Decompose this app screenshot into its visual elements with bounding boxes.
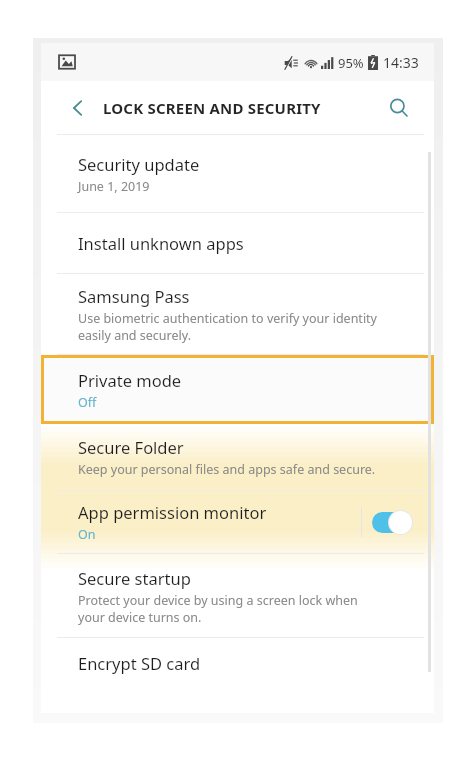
button[interactable]: App permission monitor (41, 491, 434, 553)
button[interactable]: Encrypt SD card (41, 638, 434, 688)
button[interactable]: App permission monitor toggle, On (370, 507, 416, 537)
staticText: June 1, 2019 (78, 178, 150, 195)
button[interactable]: Install unknown apps (41, 213, 434, 273)
staticText: Security update (78, 153, 200, 175)
staticText: 95% (338, 54, 364, 72)
staticText: Secure startup (78, 567, 191, 589)
staticText: Protect your device by using a screen lo… (78, 592, 358, 625)
staticText: Use biometric authentication to verify y… (78, 310, 377, 343)
staticText: 14:33 (383, 53, 419, 72)
button[interactable]: Private mode (41, 355, 434, 424)
staticText: Off (78, 394, 97, 411)
button[interactable]: Back (61, 91, 95, 125)
button[interactable]: Samsung Pass (41, 274, 434, 354)
staticText: Install unknown apps (78, 232, 244, 254)
button[interactable]: Security update (41, 135, 434, 212)
staticText: Keep your personal files and apps safe a… (78, 461, 376, 478)
button[interactable]: Search (382, 91, 416, 125)
staticText: Samsung Pass (78, 285, 190, 307)
button[interactable]: Secure startup (41, 554, 434, 637)
staticText: Secure Folder (78, 436, 184, 458)
staticText: App permission monitor (78, 501, 267, 523)
staticText: On (78, 526, 96, 543)
staticText: Private mode (78, 369, 182, 391)
staticText: Encrypt SD card (78, 652, 201, 674)
staticText: LOCK SCREEN AND SECURITY (103, 98, 321, 118)
button[interactable]: Secure Folder (41, 424, 434, 490)
